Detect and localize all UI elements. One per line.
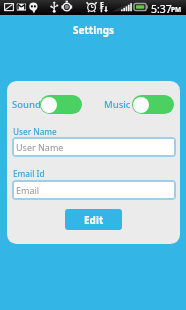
staticText: Email: [16, 184, 40, 196]
button[interactable]: User Name: [12, 137, 176, 157]
staticText: 5:37: [151, 2, 172, 16]
staticText: User Name: [16, 141, 64, 153]
staticText: Sound: [12, 98, 41, 111]
button[interactable]: Email: [12, 180, 176, 200]
staticText: Music: [104, 98, 131, 111]
staticText: User Name: [13, 126, 57, 137]
button[interactable]: Sound toggle: [40, 95, 82, 114]
staticText: Edit: [84, 213, 104, 227]
button[interactable]: Music toggle: [132, 95, 174, 114]
staticText: Settings: [73, 23, 114, 37]
staticText: Email Id: [13, 168, 45, 179]
staticText: PM: [171, 5, 182, 14]
button[interactable]: Edit: [65, 209, 122, 230]
staticText: E: [100, 0, 104, 10]
